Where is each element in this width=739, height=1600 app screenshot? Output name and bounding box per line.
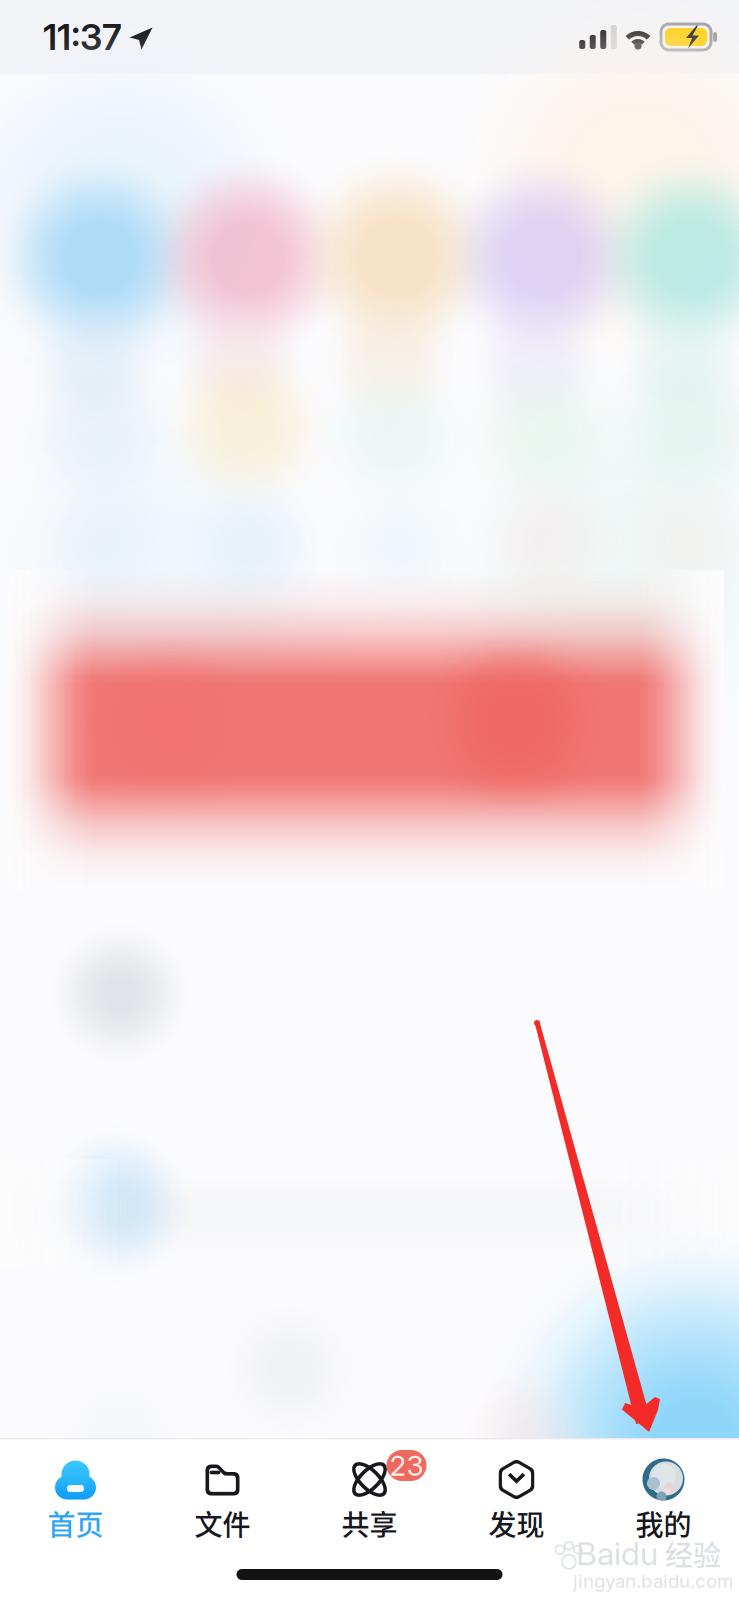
staticText: 经验: [665, 1533, 721, 1574]
staticText: 11:37: [43, 15, 122, 59]
staticText: 共享: [341, 1503, 397, 1543]
staticText: 发现: [488, 1503, 544, 1543]
button[interactable]: 文件: [149, 1439, 296, 1547]
staticText: 我的: [635, 1503, 691, 1543]
button[interactable]: 23: [296, 1439, 443, 1547]
button[interactable]: 我的: [590, 1439, 737, 1547]
staticText: 首页: [47, 1503, 103, 1543]
button[interactable]: 首页: [2, 1439, 149, 1547]
button[interactable]: 发现: [443, 1439, 590, 1547]
staticText: jingyan.baidu.com: [573, 1570, 733, 1592]
staticText: 文件: [194, 1503, 250, 1543]
staticText: 23: [389, 1449, 423, 1482]
staticText: Baidu: [576, 1534, 658, 1573]
